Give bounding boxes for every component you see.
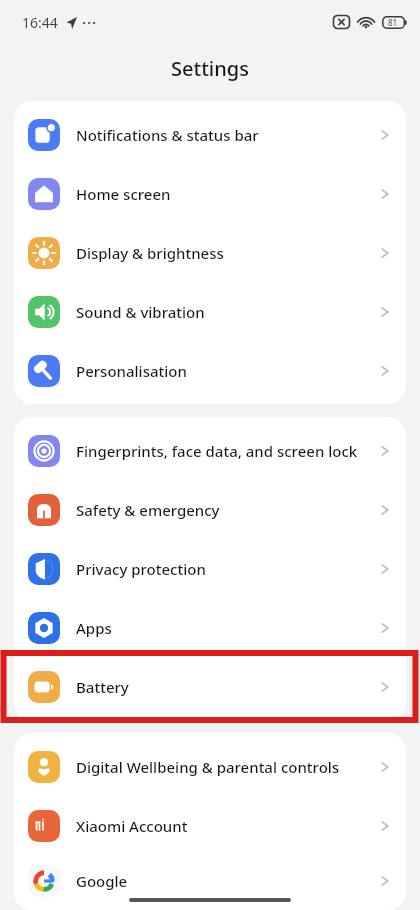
button[interactable]: Xiaomi Account [14, 796, 406, 855]
staticText: Home screen [76, 184, 368, 204]
button[interactable]: Sound & vibration [14, 282, 406, 341]
staticText: Display & brightness [76, 243, 368, 263]
staticText: Fingerprints, face data, and screen lock [76, 441, 368, 461]
button[interactable]: Battery [14, 657, 406, 716]
staticText: Battery [76, 677, 368, 697]
button[interactable]: Fingerprints, face data, and screen lock [14, 421, 406, 480]
staticText: 81 [388, 17, 398, 28]
button[interactable]: Apps [14, 598, 406, 657]
button[interactable]: Google [14, 855, 406, 906]
button[interactable]: Digital Wellbeing & parental controls [14, 737, 406, 796]
staticText: Personalisation [76, 361, 368, 381]
button[interactable]: Display & brightness [14, 223, 406, 282]
staticText: 16:44 [22, 13, 58, 32]
staticText: Safety & emergency [76, 500, 368, 520]
staticText: Settings [171, 55, 249, 82]
button[interactable]: Personalisation [14, 341, 406, 400]
staticText: Sound & vibration [76, 302, 368, 322]
staticText: Notifications & status bar [76, 125, 368, 145]
staticText: Digital Wellbeing & parental controls [76, 757, 368, 777]
staticText: Privacy protection [76, 559, 368, 579]
staticText: Xiaomi Account [76, 816, 368, 836]
staticText: Apps [76, 618, 368, 638]
button[interactable]: Notifications & status bar [14, 105, 406, 164]
button[interactable]: Privacy protection [14, 539, 406, 598]
staticText: Google [76, 871, 368, 891]
button[interactable]: Safety & emergency [14, 480, 406, 539]
button[interactable]: Home screen [14, 164, 406, 223]
